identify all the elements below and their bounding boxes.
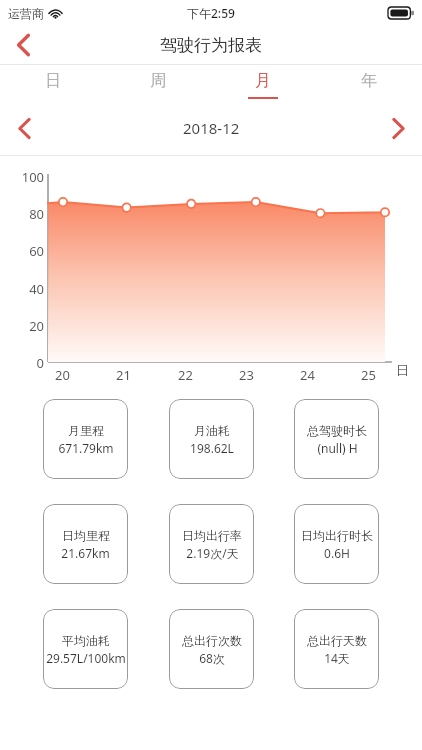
staticText: 22: [178, 366, 193, 384]
staticText: 20: [55, 366, 70, 384]
staticText: 平均油耗: [62, 633, 110, 648]
button[interactable]: 日: [0, 65, 105, 100]
staticText: 日: [396, 362, 409, 378]
staticText: 100: [21, 168, 44, 186]
staticText: 24: [300, 366, 315, 384]
staticText: 月里程: [68, 423, 104, 438]
button[interactable]: 平均油耗: [43, 609, 128, 689]
staticText: 0: [36, 354, 44, 372]
button[interactable]: Back: [0, 26, 46, 64]
button[interactable]: 日均出行时长: [294, 504, 379, 584]
button[interactable]: Next month: [374, 104, 422, 152]
button[interactable]: 总出行天数: [294, 609, 379, 689]
button[interactable]: 月油耗: [169, 399, 254, 479]
staticText: 月油耗: [194, 423, 230, 438]
staticText: 68次: [199, 650, 225, 666]
staticText: 29.57L/100km: [46, 650, 126, 666]
button[interactable]: 总驾驶时长: [294, 399, 379, 479]
button[interactable]: 总出行次数: [169, 609, 254, 689]
button[interactable]: 周: [105, 65, 210, 100]
staticText: 日均出行率: [182, 528, 242, 543]
staticText: 671.79km: [58, 440, 114, 456]
staticText: 运营商: [8, 6, 44, 21]
staticText: 21: [116, 366, 131, 384]
staticText: 0.6H: [324, 545, 350, 561]
staticText: 40: [29, 280, 44, 298]
staticText: 25: [361, 366, 376, 384]
staticText: 日: [45, 71, 61, 91]
staticText: 月: [255, 71, 271, 91]
button[interactable]: 月: [210, 65, 316, 100]
staticText: 21.67km: [61, 545, 110, 561]
button[interactable]: 日均里程: [43, 504, 128, 584]
staticText: (null) H: [317, 440, 358, 456]
staticText: 驾驶行为报表: [160, 35, 262, 56]
button[interactable]: 日均出行率: [169, 504, 254, 584]
staticText: 80: [29, 205, 44, 223]
staticText: 下午2:59: [187, 5, 235, 21]
staticText: 60: [29, 242, 44, 260]
staticText: 日均出行时长: [301, 528, 373, 543]
staticText: 年: [361, 71, 377, 91]
staticText: 总出行天数: [307, 633, 367, 648]
staticText: 2.19次/天: [186, 545, 239, 561]
staticText: 20: [29, 317, 44, 335]
button[interactable]: Previous month: [0, 104, 48, 152]
staticText: 198.62L: [190, 440, 234, 456]
staticText: 周: [150, 71, 166, 91]
button[interactable]: 月里程: [43, 399, 128, 479]
staticText: 23: [239, 366, 254, 384]
button[interactable]: 年: [316, 65, 422, 100]
staticText: 2018-12: [183, 118, 240, 138]
staticText: 总驾驶时长: [307, 423, 367, 438]
staticText: 14天: [324, 650, 350, 666]
staticText: 总出行次数: [182, 633, 242, 648]
staticText: 日均里程: [62, 528, 110, 543]
